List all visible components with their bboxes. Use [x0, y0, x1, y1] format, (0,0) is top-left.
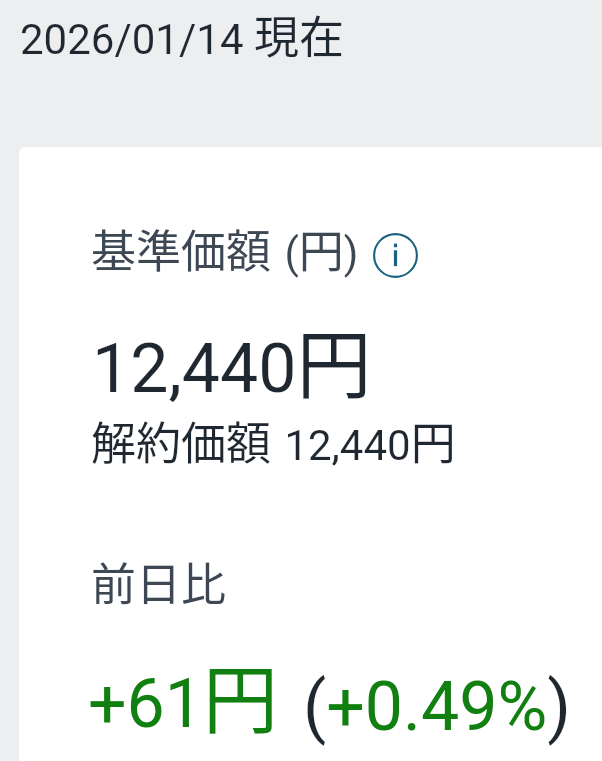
staticText: 12,440円: [92, 305, 372, 414]
button[interactable]: 基準価額の説明: [371, 231, 419, 279]
staticText: +61円: [88, 640, 279, 749]
staticText: 基準価額 (円): [91, 216, 359, 281]
staticText: 解約価額 12,440円: [91, 408, 456, 473]
staticText: 2026/01/14 現在: [20, 2, 344, 67]
staticText: (+0.49%): [303, 667, 571, 747]
staticText: 前日比: [91, 549, 227, 614]
